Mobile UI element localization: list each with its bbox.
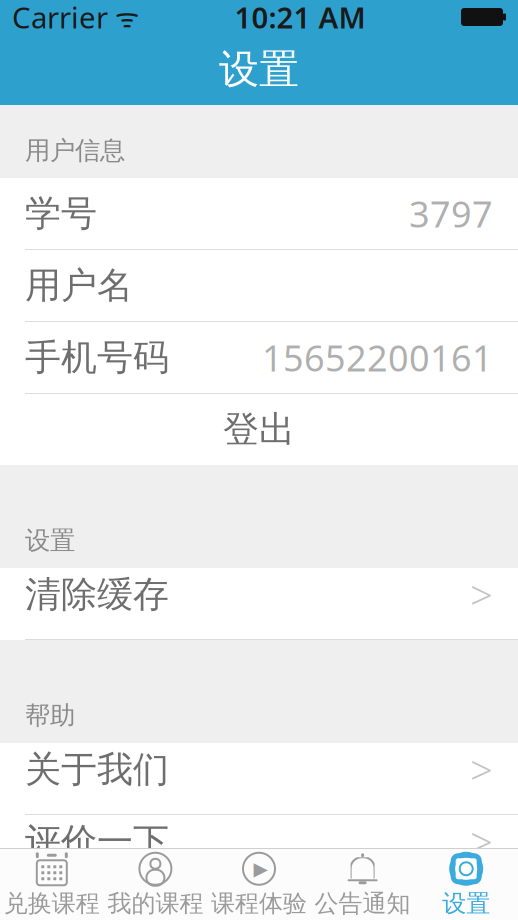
staticText: 用户名 [25,263,133,308]
staticText: 10:21 AM [234,0,365,36]
staticText: 关于我们 [25,747,169,792]
button[interactable]: 我的课程 [104,848,207,920]
staticText: 学号 [25,191,97,236]
button[interactable]: 用户名 [0,250,518,321]
button[interactable]: 学号 [0,178,518,249]
button[interactable]: ▶ [207,848,311,920]
button[interactable]: 评价一下 [0,815,518,886]
button[interactable]: 公告通知 [311,848,414,920]
button[interactable]: 清除缓存 [0,568,518,639]
staticText: 评价一下 [25,819,169,864]
staticText: 手机号码 [25,335,169,380]
staticText: 兑换课程 [4,889,100,918]
button[interactable]: 关于我们 [0,743,518,814]
staticText: 设置 [25,525,75,556]
button[interactable]: 手机号码 [0,322,518,393]
staticText: 公告通知 [315,889,411,918]
button[interactable]: 兑换课程 [0,848,104,920]
staticText: ▶ [253,858,267,879]
staticText: 3797 [409,190,493,237]
staticText: > [470,815,493,868]
staticText: 清除缓存 [25,572,169,617]
staticText: ᯤ [108,0,139,35]
staticText: 我的课程 [107,889,203,918]
staticText: 用户信息 [25,135,125,166]
staticText: 课程体验 [211,889,307,918]
staticText: 登出 [223,407,295,452]
staticText: > [470,568,493,621]
button[interactable]: 设置 [414,848,518,920]
staticText: 帮助 [25,700,75,731]
staticText: Carrier [12,0,108,36]
staticText: 设置 [442,889,490,918]
staticText: 15652200161 [262,334,493,381]
staticText: > [470,743,493,796]
staticText: 设置 [219,45,299,94]
button[interactable]: 登出 [0,394,518,465]
